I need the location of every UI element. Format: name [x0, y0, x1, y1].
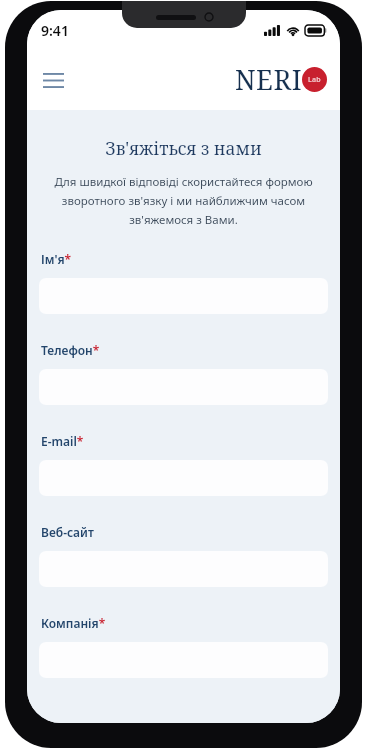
staticText: NERI [235, 61, 303, 98]
staticText: Зв'яжіться з нами [39, 136, 328, 160]
staticText: E-mail* [41, 433, 84, 449]
staticText: Веб-сайт [41, 524, 94, 540]
staticText: Ім'я* [41, 251, 72, 267]
staticText: Компанія* [41, 615, 106, 631]
button[interactable]: Open menu [35, 62, 71, 98]
staticText: 9:41 [41, 21, 69, 40]
staticText: Lab [308, 75, 321, 85]
staticText: Телефон* [41, 342, 100, 358]
staticText: Для швидкої відповіді скористайтеся форм… [41, 174, 326, 227]
button[interactable]: NERI Lab home [235, 61, 328, 98]
